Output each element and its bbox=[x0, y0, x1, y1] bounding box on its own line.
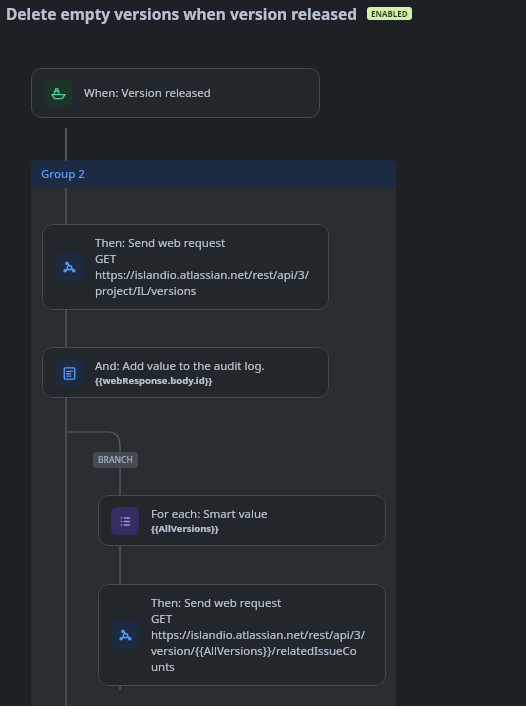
button[interactable]: Send web request action bbox=[42, 224, 329, 310]
staticText: GET bbox=[95, 251, 117, 267]
other: Version released trigger bbox=[44, 79, 72, 107]
staticText: {{AllVersions}} bbox=[151, 522, 219, 535]
staticText: When: Version released bbox=[84, 85, 211, 101]
other: Add value to the audit log action bbox=[55, 359, 83, 387]
staticText: And: Add value to the audit log. bbox=[95, 358, 265, 374]
staticText: project/IL/versions bbox=[95, 283, 197, 299]
other: Send web request action bbox=[55, 253, 83, 281]
button[interactable]: BRANCH bbox=[93, 452, 138, 468]
staticText: Group 2 bbox=[41, 166, 85, 182]
staticText: version/{{AllVersions}}/relatedIssueCo bbox=[151, 643, 357, 659]
staticText: Delete empty versions when version relea… bbox=[6, 3, 358, 24]
button[interactable]: Send web request action bbox=[98, 584, 386, 686]
staticText: ENABLED bbox=[371, 8, 408, 19]
staticText: Then: Send web request bbox=[151, 595, 282, 611]
staticText: GET bbox=[151, 611, 173, 627]
staticText: BRANCH bbox=[98, 454, 133, 466]
button[interactable]: For each smart value branch bbox=[98, 495, 386, 546]
other: Send web request action bbox=[111, 621, 139, 649]
staticText: https://islandio.atlassian.net/rest/api/… bbox=[95, 267, 309, 283]
other: For each smart value branch bbox=[111, 507, 139, 535]
staticText: https://islandio.atlassian.net/rest/api/… bbox=[151, 627, 365, 643]
staticText: For each: Smart value bbox=[151, 506, 268, 522]
button[interactable]: Add value to the audit log action bbox=[42, 347, 329, 398]
staticText: unts bbox=[151, 659, 175, 675]
button[interactable]: Version released trigger bbox=[31, 68, 320, 118]
staticText: {{webResponse.body.id}} bbox=[95, 374, 213, 387]
button[interactable]: Group 2 bbox=[31, 160, 396, 188]
staticText: Then: Send web request bbox=[95, 235, 226, 251]
